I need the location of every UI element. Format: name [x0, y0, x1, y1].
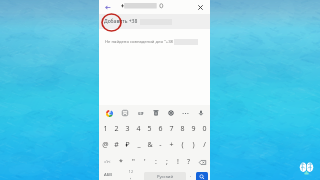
staticText: ?: [187, 157, 191, 167]
staticText: GIF: [138, 111, 144, 116]
button[interactable]: Voice input: [193, 105, 208, 121]
button[interactable]: 3: [122, 121, 133, 137]
button[interactable]: [121, 0, 191, 14]
staticText: ;: [166, 157, 168, 167]
button[interactable]: 2: [111, 121, 122, 137]
button[interactable]: ;: [161, 154, 172, 170]
button[interactable]: _: [133, 137, 144, 153]
staticText: #: [114, 140, 119, 150]
button[interactable]: Clear search: [194, 0, 206, 14]
staticText: +: [169, 140, 174, 150]
other: Logo: [299, 162, 314, 177]
button[interactable]: .: [187, 170, 195, 180]
staticText: 4: [136, 124, 141, 134]
staticText: *: [119, 157, 123, 167]
staticText: Добавить +38: [104, 18, 138, 25]
button[interactable]: 6: [155, 121, 166, 137]
button[interactable]: *: [115, 154, 127, 170]
staticText: !: [177, 157, 179, 167]
button[interactable]: 1: [99, 121, 111, 137]
staticText: 3: [125, 124, 130, 134]
staticText: 8: [180, 124, 185, 134]
button[interactable]: Search: [196, 172, 208, 180]
button[interactable]: 7: [166, 121, 177, 137]
button[interactable]: ': [139, 154, 150, 170]
button[interactable]: ): [188, 137, 199, 153]
button[interactable]: !: [172, 154, 183, 170]
button[interactable]: Google: [101, 105, 117, 121]
staticText: ': [144, 157, 146, 167]
staticText: 1: [103, 124, 108, 134]
button[interactable]: Добавить +38: [99, 14, 210, 29]
staticText: 0: [202, 124, 207, 134]
button[interactable]: 8: [177, 121, 188, 137]
staticText: Не найдено совпадений для "+38: [105, 39, 173, 45]
staticText: (: [181, 140, 184, 150]
button[interactable]: 1 2: [125, 170, 137, 180]
button[interactable]: #: [111, 137, 122, 153]
staticText: :: [155, 157, 157, 167]
button[interactable]: +: [166, 137, 177, 153]
button[interactable]: -: [155, 137, 166, 153]
button[interactable]: Clipboard: [148, 105, 163, 121]
staticText: ): [192, 140, 195, 150]
button[interactable]: More options: [178, 105, 193, 121]
staticText: .: [190, 172, 192, 178]
staticText: =\<: [104, 159, 111, 165]
button[interactable]: :: [150, 154, 161, 170]
staticText: 6: [158, 124, 163, 134]
button[interactable]: Settings: [163, 105, 178, 121]
staticText: &: [147, 140, 153, 150]
button[interactable]: Русский: [144, 172, 186, 180]
button[interactable]: ₽: [122, 137, 133, 153]
staticText: 2: [114, 124, 119, 134]
button[interactable]: (: [177, 137, 188, 153]
staticText: @: [102, 140, 109, 150]
button[interactable]: ": [127, 154, 139, 170]
staticText: 1 2: [129, 170, 133, 174]
button[interactable]: 4: [133, 121, 144, 137]
button[interactable]: @: [99, 137, 111, 153]
button[interactable]: 5: [144, 121, 155, 137]
staticText: Русский: [157, 174, 174, 180]
button[interactable]: Back: [102, 0, 113, 14]
staticText: ₽: [125, 140, 130, 150]
button[interactable]: АБВ: [100, 170, 116, 180]
staticText: /: [203, 140, 206, 150]
button[interactable]: GIF: [133, 105, 148, 121]
staticText: 9: [191, 124, 196, 134]
button[interactable]: 9: [188, 121, 199, 137]
button[interactable]: Stickers: [117, 105, 133, 121]
staticText: 7: [169, 124, 174, 134]
staticText: 5: [147, 124, 152, 134]
button[interactable]: /: [199, 137, 210, 153]
staticText: АБВ: [104, 172, 112, 178]
button[interactable]: Backspace: [194, 154, 210, 170]
staticText: ": [132, 157, 135, 167]
button[interactable]: ?: [183, 154, 194, 170]
staticText: -: [159, 140, 162, 150]
button[interactable]: &: [144, 137, 155, 153]
staticText: ,: [130, 174, 132, 180]
button[interactable]: 0: [199, 121, 210, 137]
staticText: _: [137, 140, 141, 150]
button[interactable]: =\<: [99, 154, 115, 170]
